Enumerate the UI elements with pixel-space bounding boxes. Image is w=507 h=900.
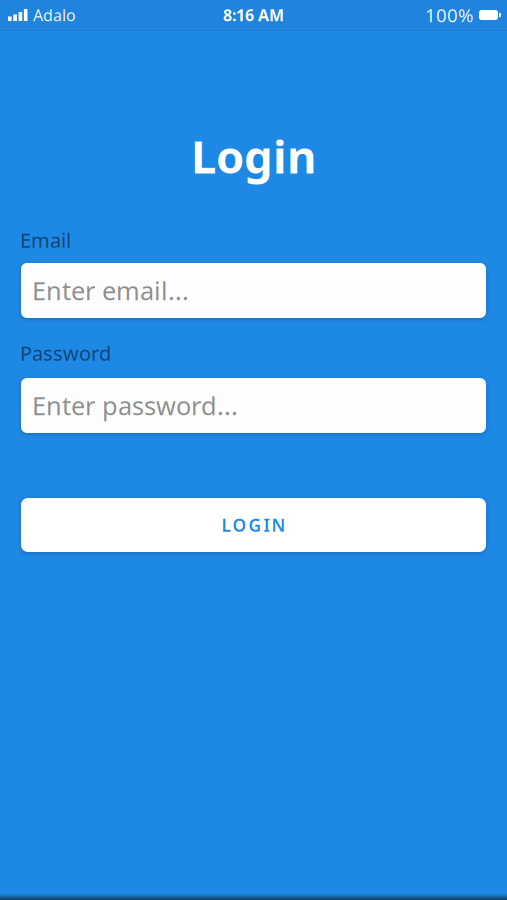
staticText: 100%	[425, 3, 474, 27]
button[interactable]: L O G I N	[21, 498, 486, 552]
staticText: Password	[20, 340, 111, 366]
staticText: Login	[191, 126, 316, 186]
button[interactable]: Enter password...	[21, 378, 486, 433]
staticText: 8:16 AM	[223, 4, 284, 26]
button[interactable]: Enter email...	[21, 263, 486, 318]
staticText: Enter email...	[32, 274, 189, 307]
staticText: L O G I N	[221, 513, 285, 536]
staticText: Enter password...	[32, 389, 238, 422]
staticText: Email	[20, 227, 71, 253]
staticText: Adalo	[33, 4, 76, 26]
